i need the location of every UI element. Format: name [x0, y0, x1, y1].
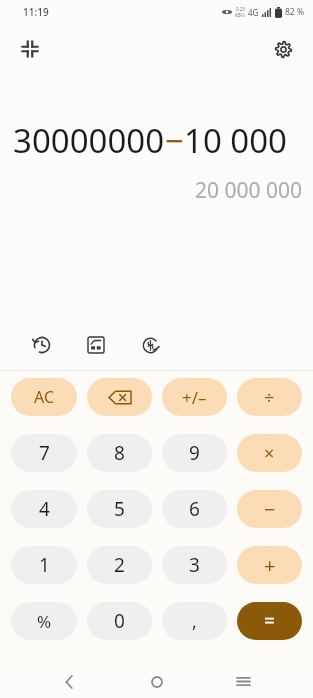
button[interactable]: 0 — [87, 602, 152, 640]
staticText: 0 — [114, 608, 125, 634]
staticText: 4G — [248, 7, 259, 18]
staticText: 1 — [39, 552, 50, 578]
staticText: 5 — [114, 496, 125, 522]
button[interactable]: Home — [140, 665, 174, 698]
staticText: 4 — [39, 496, 50, 522]
staticText: + — [264, 552, 276, 579]
staticText: 6 — [189, 496, 200, 522]
staticText: KB/s — [235, 12, 245, 18]
staticText: 30000000 — [13, 118, 165, 163]
button[interactable]: History — [24, 327, 60, 363]
button[interactable]: 6 — [162, 490, 227, 528]
staticText: 0,23 — [236, 6, 245, 12]
staticText: 10 000 000 — [184, 118, 313, 163]
button[interactable]: Back — [53, 665, 87, 698]
staticText: 9 — [189, 440, 200, 466]
staticText: 20 000 000 — [0, 176, 302, 205]
button[interactable]: 1 — [11, 546, 77, 584]
button[interactable]: Scientific calculator — [78, 327, 114, 363]
button[interactable]: 4 — [11, 490, 77, 528]
staticText: % — [37, 610, 52, 633]
button[interactable]: 9 — [162, 434, 227, 472]
staticText: 8 — [114, 440, 125, 466]
button[interactable]: 8 — [87, 434, 152, 472]
button[interactable]: 2 — [87, 546, 152, 584]
staticText: × — [264, 441, 275, 466]
staticText: = — [264, 608, 275, 634]
staticText: − — [264, 496, 276, 523]
staticText: 3 — [189, 552, 200, 578]
staticText: 11:19 — [23, 5, 49, 19]
staticText: 7 — [39, 440, 50, 466]
button[interactable]: Settings — [263, 29, 303, 69]
button[interactable]: − — [237, 490, 302, 528]
staticText: , — [192, 609, 197, 634]
button[interactable]: × — [237, 434, 302, 472]
button[interactable]: Backspace — [87, 378, 152, 416]
button[interactable]: , — [162, 602, 227, 640]
staticText: ÷ — [264, 385, 275, 410]
staticText: AC — [34, 386, 55, 408]
button[interactable]: % — [11, 602, 77, 640]
button[interactable]: 5 — [87, 490, 152, 528]
staticText: 82 % — [285, 6, 304, 18]
button[interactable]: Currency converter — [132, 327, 168, 363]
button[interactable]: +/– — [162, 378, 227, 416]
button[interactable]: Collapse — [10, 29, 50, 69]
button[interactable]: ÷ — [237, 378, 302, 416]
button[interactable]: 7 — [11, 434, 77, 472]
staticText: 2 — [114, 552, 125, 578]
button[interactable]: + — [237, 546, 302, 584]
button[interactable]: AC — [11, 378, 77, 416]
button[interactable]: = — [237, 602, 302, 640]
button[interactable]: Recents — [226, 665, 260, 698]
staticText: − — [165, 118, 184, 163]
staticText: +/– — [182, 386, 207, 409]
button[interactable]: 3 — [162, 546, 227, 584]
